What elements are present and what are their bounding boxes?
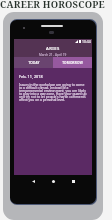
button[interactable]: TODAY <box>14 57 53 68</box>
button[interactable]: Back <box>23 175 43 187</box>
staticText: 10:34 <box>82 39 91 44</box>
staticText: TODAY <box>28 61 40 65</box>
button[interactable]: Recent apps <box>63 175 83 187</box>
staticText: ARIES <box>46 46 60 52</box>
staticText: TOMORROW <box>62 61 83 65</box>
staticText: Feb. 11, 2018 <box>19 74 43 79</box>
button[interactable]: Home <box>43 175 63 187</box>
staticText: March 21 - April 19 <box>39 53 67 57</box>
staticText: CAREER HOROSCOPE <box>0 0 105 11</box>
staticText: Issues in the workplace are going to com… <box>19 82 87 102</box>
button[interactable]: TOMORROW <box>53 57 92 68</box>
